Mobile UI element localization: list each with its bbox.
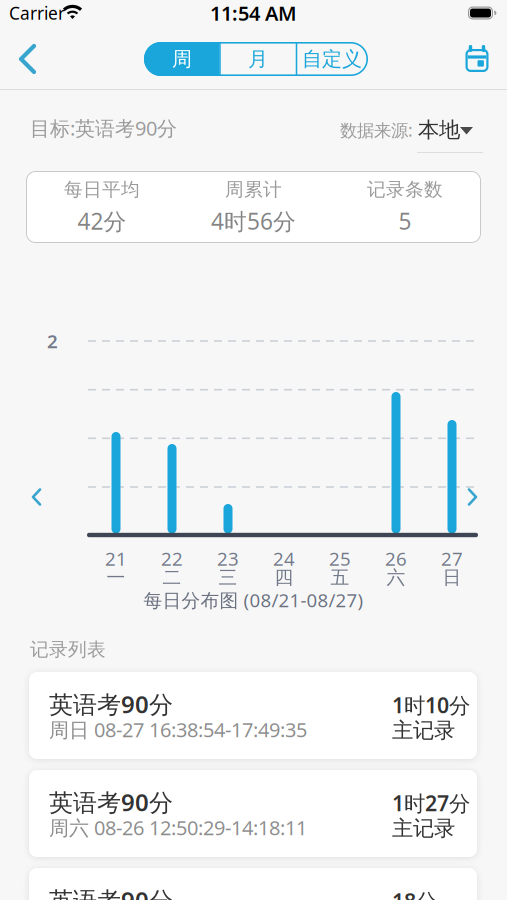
button[interactable]: 月 xyxy=(220,42,296,76)
button[interactable]: 本地 xyxy=(417,118,483,154)
staticText: 二 xyxy=(162,566,181,589)
staticText: 1时27分 xyxy=(392,789,470,817)
staticText: 42分 xyxy=(77,206,126,236)
button[interactable] xyxy=(464,485,480,508)
staticText: 六 xyxy=(386,566,405,589)
staticText: 数据来源: xyxy=(340,118,413,141)
staticText: 周 xyxy=(172,47,192,71)
staticText: 27 xyxy=(441,546,463,571)
staticText: 记录列表 xyxy=(30,638,106,661)
staticText: 24 xyxy=(273,546,295,571)
staticText: 自定义 xyxy=(302,47,362,71)
staticText: 23 xyxy=(217,546,239,571)
staticText: 4时56分 xyxy=(211,206,296,236)
staticText: 三 xyxy=(218,566,237,589)
button[interactable]: 英语考90分 xyxy=(29,672,477,759)
staticText: 英语考90分 xyxy=(49,688,173,720)
staticText: 25 xyxy=(329,546,351,571)
staticText: 21 xyxy=(105,546,127,571)
staticText: 每日分布图 (08/21-08/27) xyxy=(143,588,363,612)
staticText: 周六 08-26 12:50:29-14:18:11 xyxy=(49,814,307,841)
staticText: 5 xyxy=(399,206,412,236)
staticText: 一 xyxy=(106,566,125,589)
button[interactable]: 英语考90分 xyxy=(29,770,477,857)
button[interactable] xyxy=(10,42,44,76)
staticText: 1时10分 xyxy=(392,691,470,719)
staticText: 周累计 xyxy=(225,178,282,201)
staticText: 月 xyxy=(248,47,268,71)
staticText: 英语考90分 xyxy=(49,884,173,900)
staticText: 2 xyxy=(47,329,58,353)
button[interactable]: 英语考90分 xyxy=(29,868,477,900)
staticText: 22 xyxy=(161,546,183,571)
button[interactable] xyxy=(462,43,492,75)
staticText: 目标:英语考90分 xyxy=(30,115,177,141)
staticText: 主记录 xyxy=(392,717,455,744)
staticText: 四 xyxy=(274,566,293,589)
staticText: 记录条数 xyxy=(367,178,443,201)
button[interactable]: 周 xyxy=(144,42,219,76)
staticText: Carrier xyxy=(9,1,65,24)
staticText: 英语考90分 xyxy=(49,786,173,818)
button[interactable]: 自定义 xyxy=(296,42,367,76)
staticText: 主记录 xyxy=(392,815,455,842)
staticText: 11:54 AM xyxy=(210,0,297,26)
staticText: 日 xyxy=(442,566,461,589)
staticText: 本地 xyxy=(418,117,460,143)
staticText: 五 xyxy=(330,566,349,589)
staticText: 周日 08-27 16:38:54-17:49:35 xyxy=(49,716,307,743)
staticText: 每日平均 xyxy=(64,178,140,201)
staticText: 26 xyxy=(385,546,407,571)
staticText: 18分 xyxy=(392,887,437,900)
button[interactable] xyxy=(29,485,45,508)
